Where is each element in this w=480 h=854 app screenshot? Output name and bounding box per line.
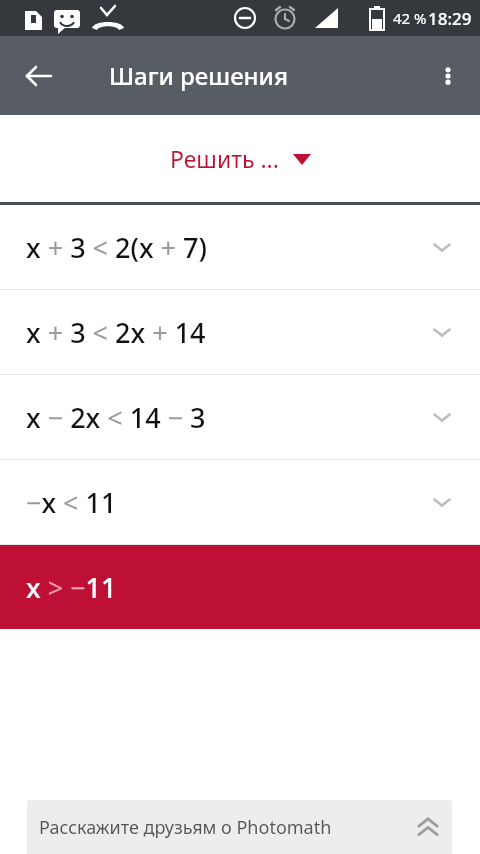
staticText: Расскажите друзьям о Photomath [39,815,332,840]
button[interactable]: Back [14,52,62,100]
button[interactable]: −x < 11 [0,460,480,544]
button[interactable]: x − 2x < 14 − 3 [0,375,480,459]
staticText: x + 3 < 2(x + 7) [26,229,207,266]
button[interactable]: Решить ... [170,143,311,174]
staticText: Решить ... [170,143,279,174]
staticText: 18:29 [428,7,472,30]
staticText: x − 2x < 14 − 3 [26,399,206,436]
button[interactable]: x + 3 < 2x + 14 [0,290,480,374]
staticText: x + 3 < 2x + 14 [26,314,206,351]
staticText: x > −11 [26,569,117,606]
staticText: 42 % [393,8,427,28]
staticText: Шаги решения [109,59,288,92]
button[interactable]: More options [424,52,472,100]
button[interactable]: x > −11 [0,545,480,629]
button[interactable]: Расскажите друзьям о Photomath [27,800,452,854]
button[interactable]: x + 3 < 2(x + 7) [0,205,480,289]
staticText: −x < 11 [26,484,117,521]
